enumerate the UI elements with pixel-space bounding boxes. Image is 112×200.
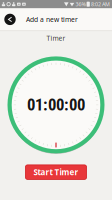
staticText: 01:00:00 (27, 95, 85, 115)
button[interactable]: Start Timer (25, 165, 86, 179)
staticText: Start Timer (33, 167, 78, 177)
staticText: Add a new timer (26, 15, 78, 24)
staticText: 36% (75, 1, 85, 8)
staticText: 8:02 AM (91, 1, 110, 8)
staticText: Timer (46, 34, 65, 43)
button[interactable]: Back (0, 8, 20, 30)
